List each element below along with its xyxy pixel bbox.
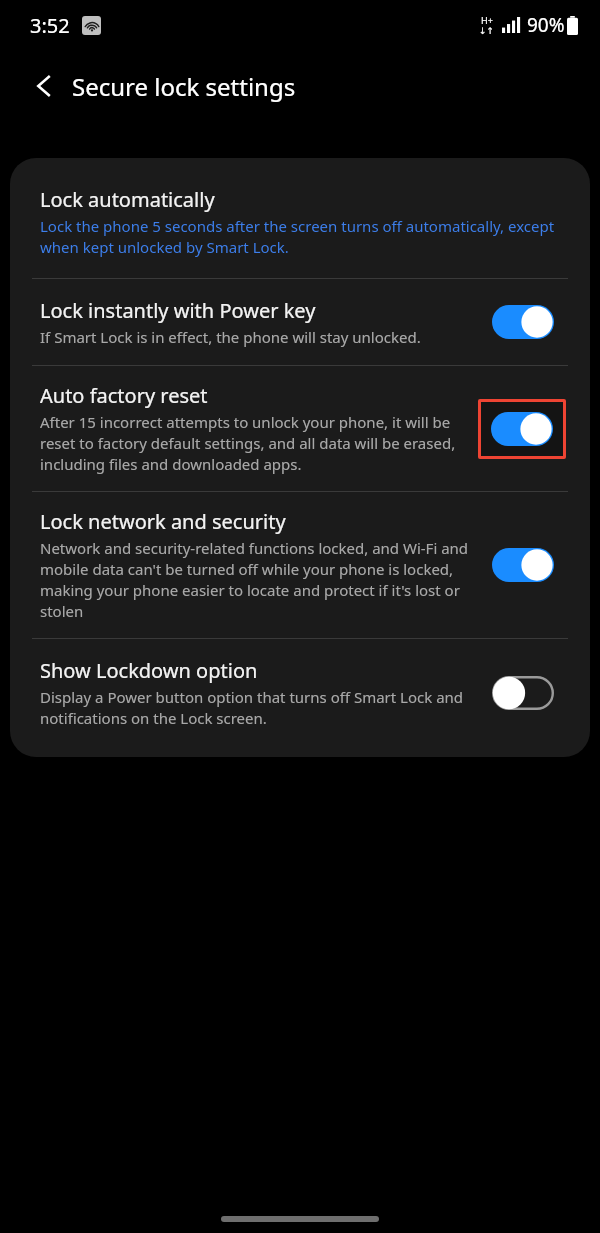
button[interactable]: Toggle on	[491, 412, 553, 446]
staticText: Lock network and security	[40, 508, 286, 535]
staticText: 3:52	[30, 12, 70, 39]
button[interactable]: Lock network and security	[10, 492, 590, 638]
staticText: Network and security-related functions l…	[40, 538, 478, 622]
staticText: 90%	[527, 12, 565, 38]
button[interactable]: Lock instantly with Power key	[10, 279, 590, 365]
staticText: ↓↑	[479, 26, 495, 36]
staticText: Show Lockdown option	[40, 657, 258, 684]
button[interactable]: Toggle on	[492, 548, 554, 582]
button[interactable]: Show Lockdown option	[10, 639, 590, 751]
button[interactable]: Lock automatically	[10, 164, 590, 278]
button[interactable]: Auto factory reset	[10, 366, 590, 491]
staticText: After 15 incorrect attempts to unlock yo…	[40, 412, 464, 475]
staticText: Auto factory reset	[40, 382, 208, 409]
staticText: Lock instantly with Power key	[40, 297, 316, 324]
staticText: Lock automatically	[40, 186, 215, 213]
staticText: Display a Power button option that turns…	[40, 687, 478, 729]
staticText: H+	[481, 14, 493, 26]
staticText: Secure lock settings	[72, 70, 296, 103]
button[interactable]: Toggle off	[492, 676, 554, 710]
button[interactable]: Back	[22, 64, 66, 108]
staticText: Lock the phone 5 seconds after the scree…	[40, 216, 556, 258]
button[interactable]: Toggle on	[492, 305, 554, 339]
staticText: If Smart Lock is in effect, the phone wi…	[40, 327, 421, 347]
